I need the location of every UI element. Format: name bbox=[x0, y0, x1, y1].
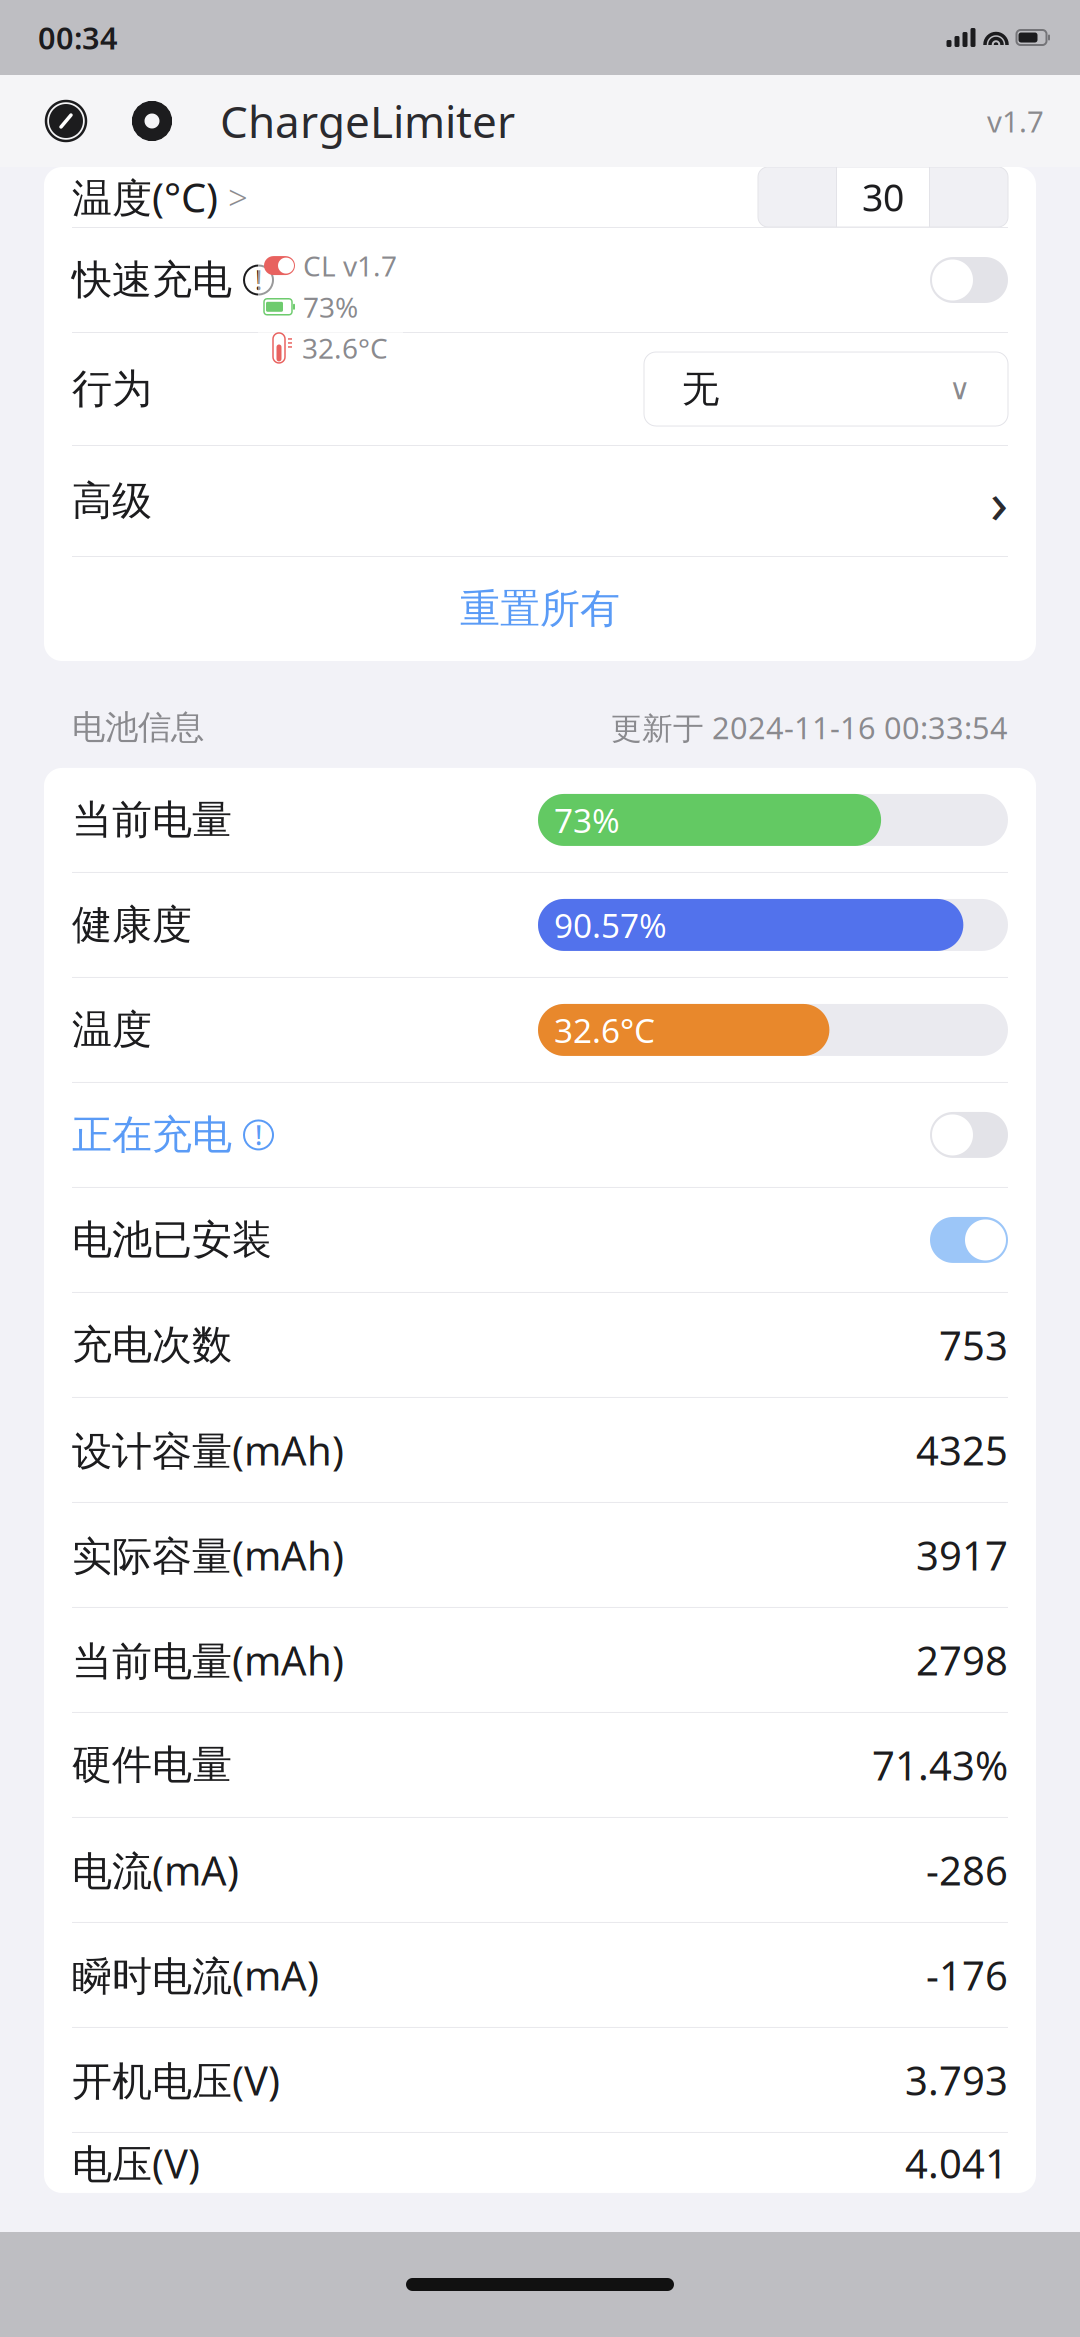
staticText: 重置所有 bbox=[460, 584, 620, 633]
button[interactable]: 重置所有 bbox=[44, 557, 1036, 661]
staticText: 当前电量(mAh) bbox=[72, 1633, 344, 1686]
staticText: 3917 bbox=[916, 1528, 1008, 1581]
staticText: 瞬时电流(mA) bbox=[72, 1948, 319, 2001]
button[interactable]: Browser bbox=[36, 93, 96, 149]
staticText: ChargeLimiter bbox=[220, 92, 515, 150]
staticText: v1.7 bbox=[987, 101, 1044, 140]
staticText: > bbox=[228, 174, 248, 220]
staticText: 90.57% bbox=[554, 903, 667, 947]
staticText: 3.793 bbox=[905, 2053, 1008, 2106]
staticText: 32.6°C bbox=[302, 329, 388, 367]
staticText: 温度 bbox=[72, 1005, 152, 1054]
staticText: 硬件电量 bbox=[72, 1740, 232, 1789]
staticText: 电压(V) bbox=[72, 2136, 200, 2189]
staticText: 健康度 bbox=[72, 900, 192, 949]
staticText: 行为 bbox=[72, 364, 152, 413]
staticText: 00:34 bbox=[38, 17, 118, 58]
button[interactable]: 正在充电 bbox=[44, 1083, 1036, 1187]
staticText: ! bbox=[255, 1117, 262, 1153]
staticText: 正在充电 bbox=[72, 1110, 232, 1159]
staticText: 电池信息 bbox=[72, 707, 204, 748]
staticText: 温度(°C) bbox=[72, 170, 218, 223]
staticText: 快速充电 bbox=[72, 255, 232, 304]
staticText: 无 bbox=[682, 366, 719, 412]
staticText: -286 bbox=[926, 1843, 1008, 1896]
staticText: 电流(mA) bbox=[72, 1843, 239, 1896]
staticText: 4325 bbox=[916, 1423, 1008, 1476]
staticText: 充电次数 bbox=[72, 1320, 232, 1369]
staticText: 73% bbox=[303, 288, 358, 325]
button[interactable]: 高级 bbox=[44, 446, 1036, 556]
staticText: 电池已安装 bbox=[72, 1215, 272, 1264]
staticText: 73% bbox=[554, 798, 620, 842]
button[interactable]: Settings bbox=[122, 93, 182, 149]
staticText: ! bbox=[255, 262, 262, 298]
staticText: 实际容量(mAh) bbox=[72, 1528, 344, 1581]
staticText: 开机电压(V) bbox=[72, 2053, 280, 2106]
button[interactable]: 电池已安装 bbox=[44, 1188, 1036, 1292]
staticText: 更新于 2024-11-16 00:33:54 bbox=[611, 707, 1008, 748]
staticText: 当前电量 bbox=[72, 795, 232, 844]
staticText: 32.6°C bbox=[554, 1008, 655, 1052]
staticText: 2798 bbox=[916, 1633, 1008, 1686]
button[interactable]: 快速充电 bbox=[44, 228, 1036, 332]
staticText: ∨ bbox=[949, 372, 970, 406]
staticText: 71.43% bbox=[872, 1738, 1008, 1791]
staticText: 30 bbox=[862, 172, 904, 222]
staticText: CL v1.7 bbox=[303, 247, 397, 284]
button[interactable]: 无 bbox=[644, 352, 1008, 426]
staticText: › bbox=[990, 462, 1008, 540]
staticText: 4.041 bbox=[905, 2136, 1008, 2189]
staticText: 753 bbox=[939, 1318, 1008, 1371]
staticText: 高级 bbox=[72, 476, 152, 525]
staticText: -176 bbox=[926, 1948, 1008, 2001]
staticText: 设计容量(mAh) bbox=[72, 1423, 344, 1476]
